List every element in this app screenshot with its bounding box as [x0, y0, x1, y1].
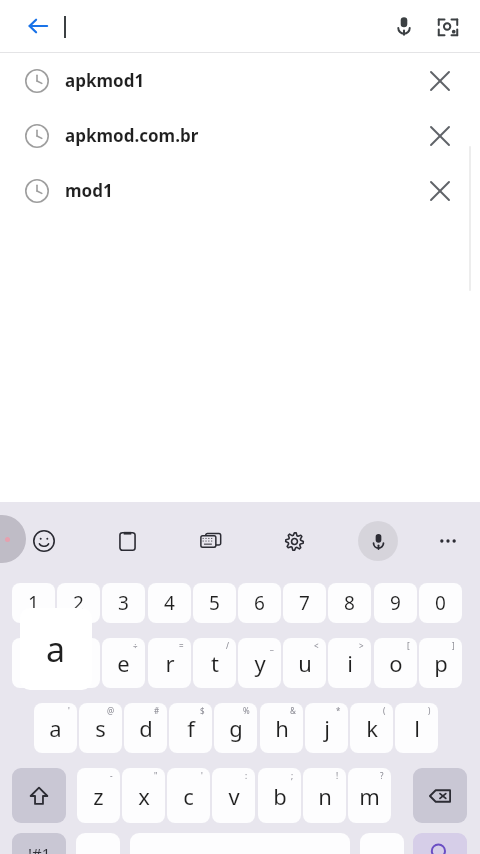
button[interactable]: mod1 [0, 163, 480, 218]
staticText: $ [200, 705, 205, 716]
staticText: 7 [299, 590, 310, 616]
button[interactable]: Settings [274, 521, 314, 561]
button[interactable]: 8 [328, 583, 371, 623]
staticText: x [138, 781, 150, 811]
button[interactable]: p [419, 638, 462, 688]
staticText: > [359, 640, 364, 651]
button[interactable]: Voice input [358, 521, 398, 561]
button[interactable]: a [34, 703, 77, 753]
button[interactable]: Comma [76, 833, 120, 854]
button[interactable]: 3 [102, 583, 145, 623]
staticText: 8 [344, 590, 355, 616]
button[interactable]: t [193, 638, 236, 688]
staticText: i [347, 648, 353, 678]
button[interactable]: Emoji [24, 521, 64, 561]
button[interactable]: 1 [12, 583, 55, 623]
staticText: e [117, 648, 130, 678]
button[interactable]: s [79, 703, 122, 753]
staticText: b [273, 781, 287, 811]
button[interactable]: q [12, 638, 55, 688]
staticText: ? [380, 770, 384, 781]
button[interactable]: l [395, 703, 438, 753]
button[interactable]: r [148, 638, 191, 688]
staticText: ; [291, 770, 294, 781]
button[interactable]: v [212, 768, 255, 823]
button[interactable]: 6 [238, 583, 281, 623]
button[interactable]: Switch keyboard [191, 521, 231, 561]
staticText: ' [201, 770, 203, 781]
button[interactable]: o [374, 638, 417, 688]
staticText: [ [407, 640, 410, 651]
staticText: ! [336, 770, 339, 781]
button[interactable]: 0 [419, 583, 462, 623]
button[interactable]: 2 [57, 583, 100, 623]
button[interactable]: x [122, 768, 165, 823]
staticText: l [414, 713, 420, 743]
button[interactable]: z [77, 768, 120, 823]
button[interactable]: Voice search [380, 2, 428, 50]
staticText: j [324, 713, 330, 743]
button[interactable]: apkmod.com.br [0, 108, 480, 163]
button[interactable]: j [305, 703, 348, 753]
button[interactable]: Backspace [413, 768, 467, 823]
staticText: k [366, 713, 378, 743]
staticText: g [229, 713, 243, 743]
staticText: ] [452, 640, 455, 651]
button[interactable]: n [303, 768, 346, 823]
staticText: s [95, 713, 106, 743]
button[interactable]: Clipboard [107, 521, 147, 561]
staticText: f [187, 713, 195, 743]
button[interactable]: k [350, 703, 393, 753]
staticText: y [254, 648, 266, 678]
button[interactable]: Period [360, 833, 404, 854]
staticText: ' [68, 705, 70, 716]
button[interactable]: Search [413, 833, 467, 854]
button[interactable]: apkmod1 [0, 53, 480, 108]
button[interactable]: 5 [193, 583, 236, 623]
button[interactable]: d [124, 703, 167, 753]
button[interactable]: 7 [283, 583, 326, 623]
staticText: c [183, 781, 194, 811]
button[interactable]: Google Lens [424, 2, 472, 50]
staticText: 6 [254, 590, 265, 616]
button[interactable]: f [169, 703, 212, 753]
staticText: a [46, 626, 66, 672]
button[interactable]: Remove apkmod1 [420, 61, 460, 101]
button[interactable]: e [102, 638, 145, 688]
button[interactable]: g [214, 703, 257, 753]
button[interactable]: Symbols [12, 833, 66, 854]
button[interactable]: 9 [374, 583, 417, 623]
staticText: 9 [390, 590, 401, 616]
button[interactable]: h [260, 703, 303, 753]
button[interactable]: Back [16, 4, 60, 48]
staticText: # [154, 705, 160, 716]
button[interactable]: i [328, 638, 371, 688]
staticText: apkmod1 [65, 69, 145, 92]
button[interactable]: Shift [12, 768, 66, 823]
button[interactable]: b [258, 768, 301, 823]
staticText: % [243, 705, 250, 716]
staticText: 2 [73, 590, 84, 616]
staticText: mod1 [65, 179, 113, 202]
button[interactable]: c [167, 768, 210, 823]
staticText: h [275, 713, 289, 743]
staticText: u [298, 648, 312, 678]
button[interactable]: More options [428, 521, 468, 561]
button[interactable]: Remove apkmod.com.br [420, 116, 460, 156]
staticText: p [434, 648, 448, 678]
button[interactable]: u [283, 638, 326, 688]
button[interactable]: y [238, 638, 281, 688]
button[interactable]: Remove mod1 [420, 171, 460, 211]
button[interactable]: m [348, 768, 391, 823]
staticText: @ [107, 705, 115, 716]
staticText: a [49, 713, 62, 743]
staticText: r [165, 648, 175, 678]
staticText: - [110, 770, 113, 781]
button[interactable]: w [57, 638, 100, 688]
button[interactable]: 4 [148, 583, 191, 623]
